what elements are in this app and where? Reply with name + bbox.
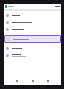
button[interactable] (4, 12, 61, 19)
button[interactable] (4, 45, 61, 52)
button[interactable]: nav (30, 78, 36, 84)
button[interactable] (4, 35, 61, 43)
button[interactable]: nav (45, 78, 51, 84)
button[interactable]: nav (14, 78, 20, 84)
button[interactable] (4, 26, 61, 33)
button[interactable] (4, 52, 61, 59)
button[interactable] (4, 19, 61, 26)
